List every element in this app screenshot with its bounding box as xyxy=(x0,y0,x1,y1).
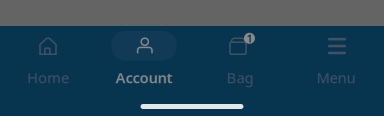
button[interactable]: Home xyxy=(0,31,96,87)
button[interactable]: Account xyxy=(96,31,192,87)
button[interactable]: Menu xyxy=(288,31,384,87)
staticText: Menu xyxy=(316,68,355,87)
staticText: 1 xyxy=(246,31,252,45)
staticText: Bag xyxy=(226,68,253,87)
staticText: Account xyxy=(115,68,172,87)
staticText: Home xyxy=(27,68,69,87)
button[interactable]: 1 xyxy=(192,31,288,87)
